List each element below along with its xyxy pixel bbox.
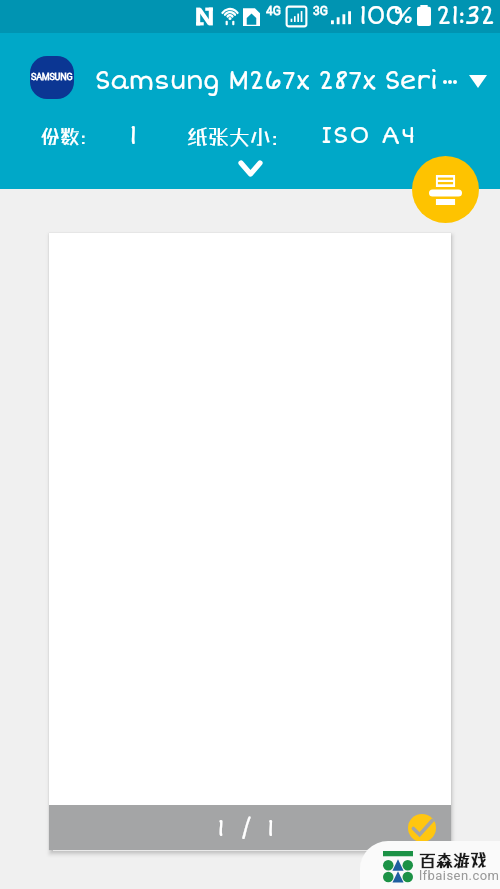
- staticText: %: [393, 2, 414, 30]
- staticText: 21:32: [436, 1, 495, 32]
- staticText: 4G: [266, 4, 281, 18]
- staticText: 纸张大小：: [187, 124, 292, 149]
- staticText: SAMSUNG: [31, 72, 73, 83]
- staticText: 100: [359, 1, 404, 32]
- button[interactable]: Selected: [408, 814, 436, 842]
- button[interactable]: Expand options: [222, 153, 278, 183]
- staticText: 1: [129, 120, 138, 152]
- staticText: 百森游戏: [419, 850, 487, 870]
- staticText: lfbaisen.com: [419, 868, 500, 883]
- staticText: Samsung M267x 287x Seri: [95, 66, 438, 97]
- staticText: 份数：: [40, 124, 100, 148]
- button[interactable]: Print: [412, 156, 479, 223]
- button[interactable]: SAMSUNG: [0, 33, 500, 130]
- button[interactable]: [49, 233, 451, 850]
- staticText: 1 / 1: [217, 814, 279, 844]
- staticText: 3G: [313, 4, 328, 18]
- staticText: ISO A4: [321, 121, 418, 151]
